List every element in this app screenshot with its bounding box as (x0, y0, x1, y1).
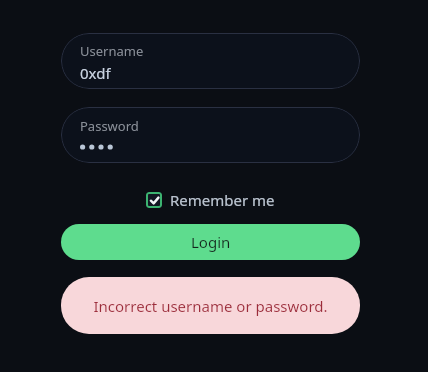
button[interactable]: Remember me (144, 188, 277, 212)
staticText: Incorrect username or password. (93, 296, 328, 316)
staticText: Remember me (170, 190, 275, 210)
staticText: Login (191, 232, 231, 252)
staticText: 0xdf (80, 63, 111, 81)
staticText: Username (80, 42, 144, 60)
button[interactable]: Login (61, 224, 360, 260)
button[interactable]: Password (61, 107, 360, 163)
staticText: Password (80, 117, 139, 135)
button[interactable]: Username (61, 33, 360, 89)
